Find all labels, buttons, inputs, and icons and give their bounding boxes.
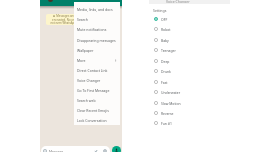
staticText: Media, links, and docs (77, 7, 113, 12)
button[interactable]: Go To First Message (74, 85, 120, 95)
other: Camera (103, 149, 107, 152)
staticText: Robot (161, 27, 171, 32)
button[interactable]: More (74, 55, 120, 65)
staticText: Underwater (161, 90, 181, 95)
button[interactable]: OFF (149, 14, 230, 24)
staticText: Deep (161, 59, 170, 64)
staticText: OFF (161, 17, 168, 22)
staticText: Reverse (161, 111, 174, 116)
staticText: Mute notifications (77, 27, 107, 32)
button[interactable]: Search (74, 14, 120, 24)
staticText: Clear Recent Emojis (77, 108, 109, 113)
button[interactable]: Direct Contact Link (74, 65, 120, 75)
staticText: Voice Changer (77, 78, 101, 83)
staticText: Go To First Message (77, 88, 110, 93)
button[interactable]: Teenager (149, 45, 230, 55)
button[interactable]: Reverse (149, 108, 230, 118)
button[interactable]: Wallpaper (74, 45, 120, 55)
staticText: encrypted. No one outside of this chat, (52, 18, 103, 21)
button[interactable]: Deep (149, 56, 230, 66)
staticText: Teenager (161, 48, 176, 53)
staticText: Wallpaper (77, 48, 94, 53)
staticText: Drunk (161, 69, 171, 74)
button[interactable]: Search web (74, 95, 120, 105)
staticText: Disappearing messages (77, 38, 116, 43)
button[interactable]: Fast (149, 77, 230, 87)
staticText: Fast (161, 80, 168, 85)
button[interactable]: Mute notifications (74, 24, 120, 34)
staticText: Search (77, 17, 88, 22)
staticText: Message (49, 149, 64, 152)
staticText: Fun #1 (161, 121, 172, 126)
button[interactable]: Voice Changer (74, 75, 120, 85)
staticText: Lock Conversation (77, 118, 107, 123)
button[interactable]: Underwater (149, 87, 230, 97)
staticText: Search web (77, 98, 96, 103)
staticText: More (77, 58, 86, 63)
staticText: not even WhatsApp, can read or listen to (50, 21, 104, 25)
staticText: Messages and calls are end-to-end (56, 14, 102, 18)
staticText: Settings (153, 8, 167, 13)
staticText: Voice Changer (166, 0, 190, 3)
other: Attach (94, 149, 98, 152)
button[interactable]: Drunk (149, 66, 230, 76)
button[interactable]: Record voice message (112, 146, 121, 152)
button[interactable]: Lock Conversation (74, 115, 120, 125)
staticText: Slow Motion (161, 101, 181, 106)
staticText: Baby (161, 38, 169, 43)
button[interactable]: Media, links, and docs (74, 4, 120, 14)
button[interactable]: Message (41, 146, 110, 152)
button[interactable]: Disappearing messages (74, 35, 120, 45)
button[interactable]: Robot (149, 24, 230, 34)
button[interactable]: Fun #1 (149, 118, 230, 128)
staticText: Direct Contact Link (77, 68, 108, 73)
button[interactable]: Baby (149, 35, 230, 45)
button[interactable]: Slow Motion (149, 98, 230, 108)
button[interactable]: Clear Recent Emojis (74, 105, 120, 115)
